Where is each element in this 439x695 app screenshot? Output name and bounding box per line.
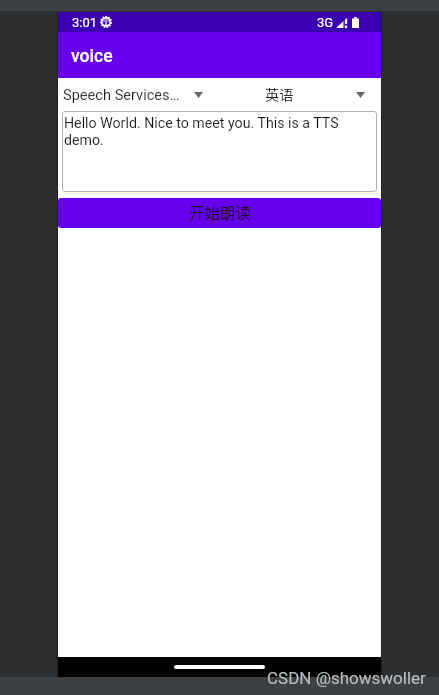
button[interactable]: Hello World. Nice to meet you. This is a… [62,111,377,192]
other: Battery full [352,17,359,28]
staticText: 开始朗读 [189,201,251,223]
staticText: 3G [317,15,334,30]
staticText: Speech Services… [63,86,180,103]
other: Developer options [100,16,112,28]
staticText: 3:01 [72,15,98,30]
staticText: voice [71,46,113,67]
staticText: 英语 [265,84,294,105]
button[interactable]: Select TTS engine [58,78,219,111]
staticText: Hello World. Nice to meet you. This is a… [64,115,373,148]
button[interactable]: 开始朗读 [58,198,381,228]
button[interactable]: Select language [219,78,381,111]
button[interactable]: Home [174,665,265,669]
staticText: CSDN @showswoller [267,668,426,688]
other: Mobile signal [336,17,348,28]
